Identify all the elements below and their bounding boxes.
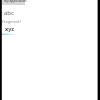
button[interactable]: abc [4, 9, 14, 17]
button[interactable] [2, 0, 25, 5]
staticText: My Application [4, 0, 27, 3]
button[interactable]: xyz [5, 25, 15, 32]
staticText: Fragment! [2, 19, 21, 24]
